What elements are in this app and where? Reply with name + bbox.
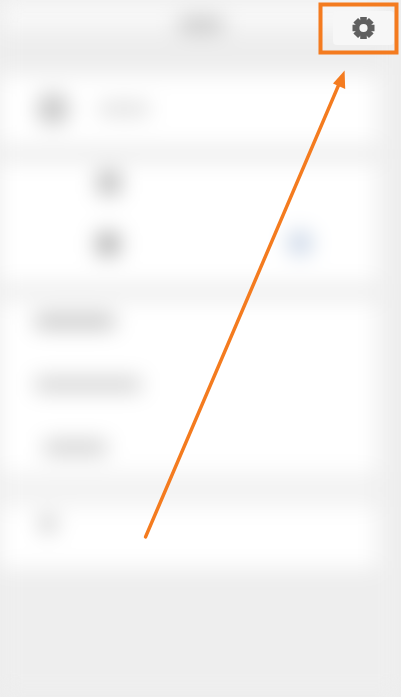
button[interactable]: Settings <box>333 11 394 45</box>
